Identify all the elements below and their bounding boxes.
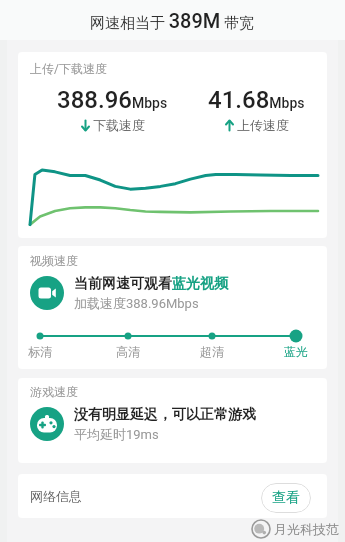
staticText: 当前网速可观看蓝光视频 xyxy=(74,275,228,293)
staticText: 加载速度388.96Mbps xyxy=(74,295,199,311)
staticText: 高清 xyxy=(116,344,140,359)
button[interactable]: 蓝光 xyxy=(284,344,308,359)
button[interactable]: 网络信息 xyxy=(18,474,327,518)
staticText: 没有明显延迟，可以正常游戏 xyxy=(74,406,256,424)
staticText: 平均延时19ms xyxy=(74,426,159,442)
staticText: 网速相当于 389M 带宽 xyxy=(90,9,255,32)
staticText: 上传速度 xyxy=(237,117,289,133)
button[interactable]: 查看 xyxy=(261,483,311,513)
staticText: 388.96Mbps xyxy=(57,86,168,114)
staticText: 41.68Mbps xyxy=(208,86,305,114)
staticText: 下载速度 xyxy=(93,117,145,133)
staticText: 视频速度 xyxy=(30,253,78,268)
staticText: 游戏速度 xyxy=(30,384,78,399)
staticText: 超清 xyxy=(200,344,224,359)
staticText: 查看 xyxy=(272,489,300,507)
staticText: 上传/下载速度 xyxy=(30,61,107,76)
staticText: 月光科技范 xyxy=(274,521,339,537)
staticText: 网络信息 xyxy=(30,488,82,504)
staticText: 标清 xyxy=(28,344,52,359)
